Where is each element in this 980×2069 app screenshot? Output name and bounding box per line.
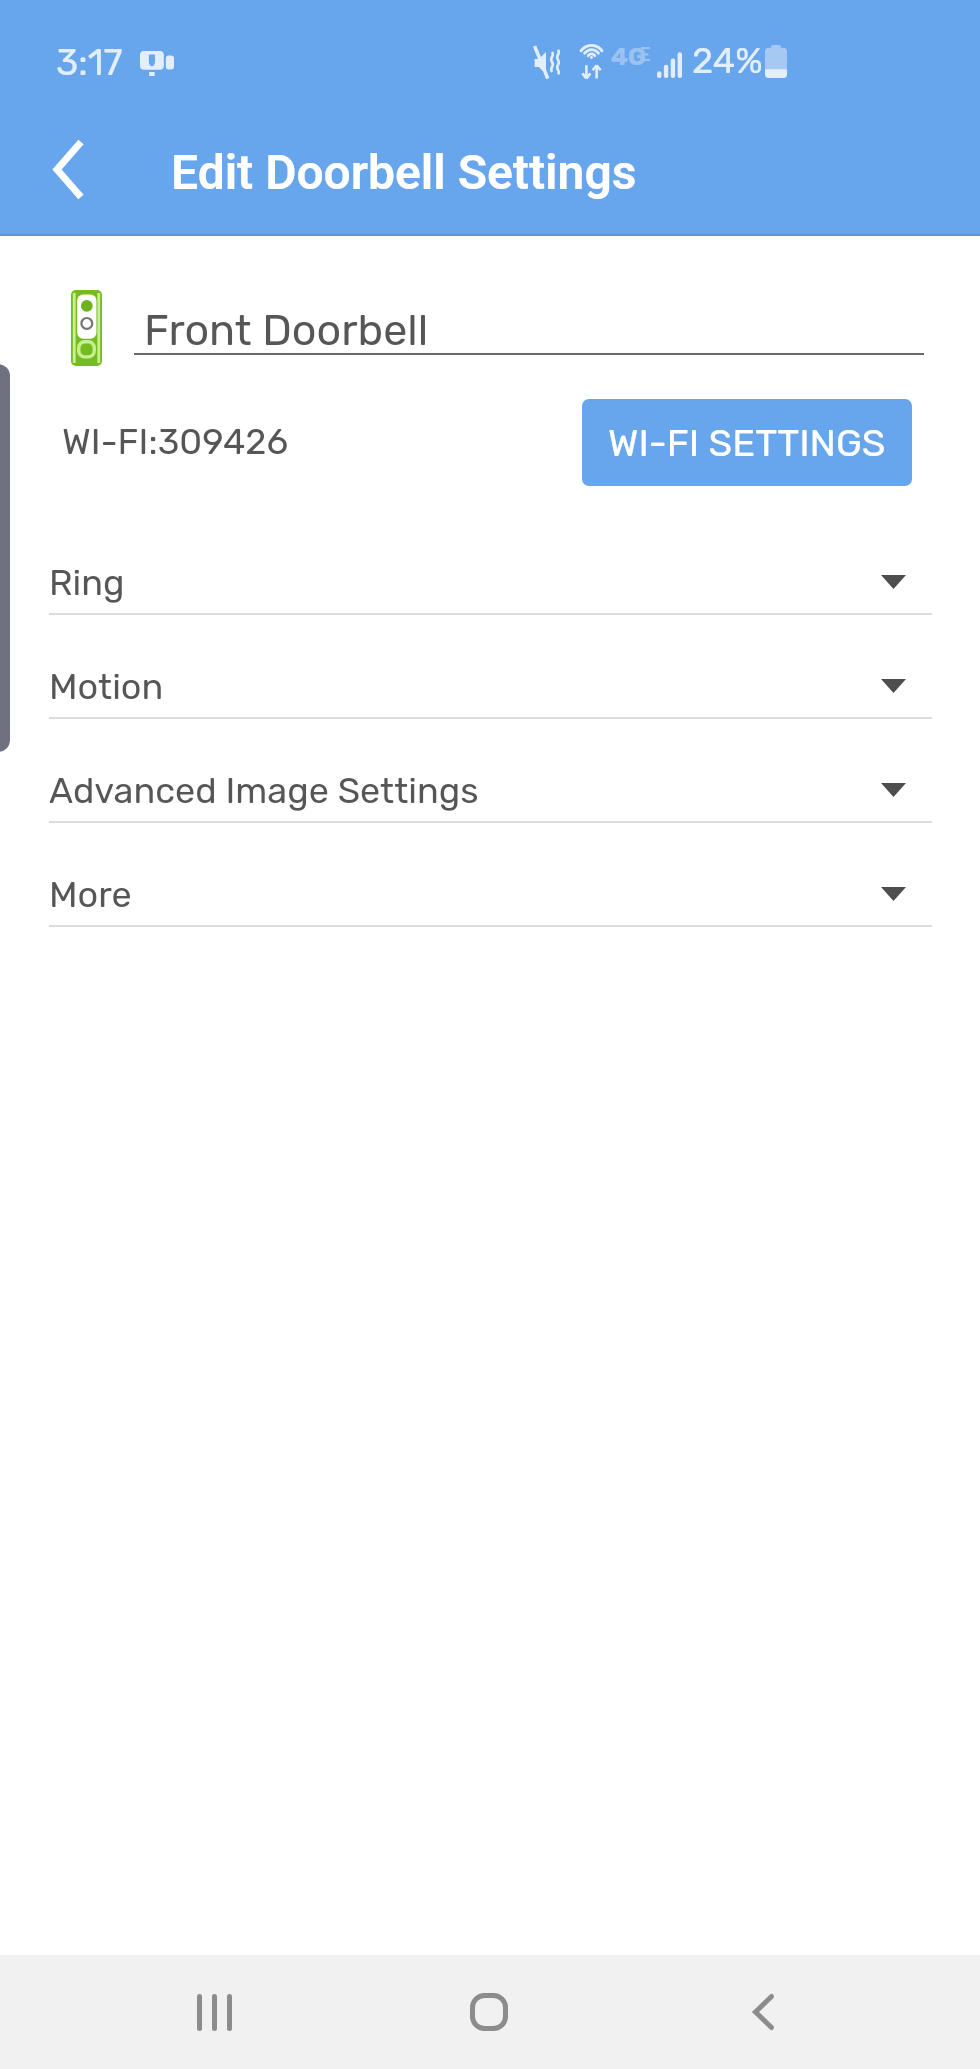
button[interactable]: Back — [29, 129, 109, 209]
staticText: Motion — [49, 665, 164, 708]
staticText: Edit Doorbell Settings — [171, 144, 637, 200]
button[interactable]: Home — [434, 1955, 544, 2069]
staticText: 3:17 — [56, 40, 123, 84]
staticText: Advanced Image Settings — [49, 769, 479, 812]
button[interactable]: Advanced Image Settings — [0, 717, 980, 821]
staticText: WI-FI:309426 — [62, 420, 289, 463]
staticText: Front Doorbell — [144, 305, 429, 356]
staticText: 24% — [692, 39, 763, 82]
button[interactable]: Ring — [0, 509, 980, 613]
button[interactable]: More — [0, 821, 980, 925]
staticText: 4G — [611, 42, 647, 72]
staticText: More — [49, 873, 132, 916]
button[interactable]: Recents — [159, 1955, 269, 2069]
staticText: Ring — [49, 561, 125, 604]
button[interactable]: Back — [708, 1955, 818, 2069]
button[interactable]: WI-FI SETTINGS — [582, 399, 912, 486]
staticText: WI-FI SETTINGS — [608, 420, 886, 465]
button[interactable]: Motion — [0, 613, 980, 717]
